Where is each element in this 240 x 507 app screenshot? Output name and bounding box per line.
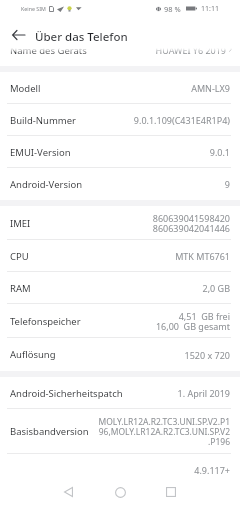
staticText: Über das Telefon: [35, 29, 128, 42]
staticText: Keine SIM: [21, 5, 46, 12]
staticText: 1520 x 720: [184, 349, 230, 361]
staticText: 9.0.1.109(C431E4R1P4): [133, 114, 230, 126]
staticText: 4.9.117+: [194, 464, 230, 476]
staticText: HUAWEI Y6 2019: [155, 44, 226, 54]
button[interactable]: Back: [57, 481, 79, 503]
button[interactable]: Recent apps: [160, 481, 182, 503]
staticText: AMN-LX9: [191, 82, 230, 94]
button[interactable]: Android-Sicherheitspatch: [0, 377, 240, 409]
staticText: 1. April 2019: [177, 387, 230, 399]
staticText: 11:11: [201, 4, 219, 14]
staticText: Auflösung: [10, 348, 56, 361]
staticText: Android-Sicherheitspatch: [10, 387, 123, 400]
button[interactable]: Modell: [0, 72, 240, 104]
staticText: MOLY.LR12A.R2.TC3.UNI.SP.V2.P1 96,MOLY.L…: [98, 416, 230, 447]
staticText: 2,0 GB: [202, 282, 230, 294]
button[interactable]: Android-Version: [0, 168, 240, 200]
button[interactable]: 4.9.117+: [0, 454, 240, 486]
staticText: EMUI-Version: [10, 146, 71, 159]
button[interactable]: Telefonspeicher: [0, 304, 240, 338]
staticText: 9.0.1: [209, 146, 230, 158]
button[interactable]: EMUI-Version: [0, 136, 240, 168]
staticText: RAM: [10, 282, 31, 295]
button[interactable]: Auflösung: [0, 338, 240, 371]
button[interactable]: RAM: [0, 272, 240, 304]
staticText: Telefonspeicher: [10, 315, 81, 328]
staticText: MTK MT6761: [175, 250, 230, 262]
button[interactable]: Home: [109, 481, 131, 503]
staticText: Name des Geräts: [10, 44, 87, 54]
button[interactable]: Build-Nummer: [0, 104, 240, 136]
staticText: Android-Version: [10, 178, 83, 191]
staticText: CPU: [10, 250, 29, 263]
button[interactable]: IMEI: [0, 206, 240, 240]
staticText: Basisbandversion: [10, 425, 89, 438]
staticText: 860639041598420 860639042041446: [152, 212, 230, 234]
staticText: Build-Nummer: [10, 114, 76, 127]
button[interactable]: Basisbandversion: [0, 409, 240, 454]
button[interactable]: Back: [5, 28, 31, 41]
staticText: 98 %: [164, 4, 181, 14]
staticText: Modell: [10, 82, 41, 95]
staticText: 4,51 GB frei 16,00 GB gesamt: [155, 310, 230, 332]
button[interactable]: CPU: [0, 240, 240, 272]
staticText: 9: [224, 178, 230, 190]
staticText: IMEI: [10, 217, 31, 230]
